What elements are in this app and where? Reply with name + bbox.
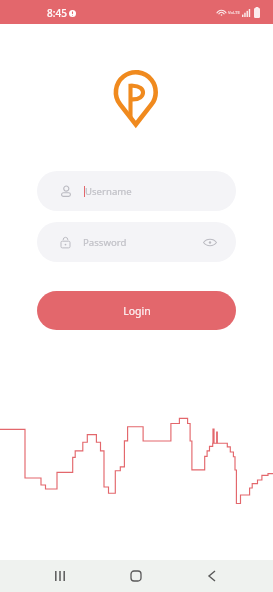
staticText: VoLTE	[228, 10, 240, 16]
staticText: 8:45	[47, 6, 67, 20]
button[interactable]: Back	[192, 560, 232, 592]
staticText: Username	[85, 185, 132, 198]
button[interactable]: Username	[37, 171, 236, 211]
staticText: Login	[123, 304, 151, 318]
staticText: Password	[83, 236, 127, 249]
button[interactable]: Password	[37, 222, 236, 262]
button[interactable]: Home	[116, 560, 156, 592]
button[interactable]: Recents	[40, 560, 80, 592]
button[interactable]: Show password	[202, 234, 218, 250]
button[interactable]: Login	[37, 291, 236, 330]
